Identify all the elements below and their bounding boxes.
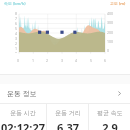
staticText: 2 (46, 58, 49, 63)
staticText: 1 (32, 58, 35, 63)
staticText: 4 (75, 58, 78, 63)
staticText: 02:12:27 (1, 120, 45, 130)
staticText: 6.37 (57, 120, 79, 130)
staticText: 4 (15, 31, 18, 36)
button[interactable]: 운동 시간 (0, 104, 46, 130)
staticText: 7 (15, 16, 18, 21)
staticText: 3 (61, 58, 64, 63)
button[interactable]: 운동 거리 (47, 104, 88, 130)
staticText: 400 (107, 11, 114, 16)
staticText: 평균 속도 (97, 109, 123, 117)
staticText: 운동 시간 (10, 109, 36, 117)
staticText: 속도 (km/h) (4, 1, 26, 6)
staticText: 5 (90, 58, 93, 63)
staticText: 운동 거리 (55, 109, 81, 117)
staticText: 운동 정보 (7, 89, 37, 99)
staticText: 2 (15, 41, 18, 46)
staticText: 8 (15, 11, 18, 16)
staticText: 고도 (m) (110, 1, 126, 6)
staticText: 1 (15, 46, 18, 51)
staticText: 0 (15, 51, 18, 53)
button[interactable]: 평균 속도 (89, 104, 130, 130)
staticText: 5 (15, 26, 18, 31)
staticText: 0 (107, 48, 110, 53)
staticText: 300 (107, 20, 114, 25)
staticText: 0 (17, 58, 20, 63)
staticText: 6 (15, 21, 18, 26)
staticText: 3 (15, 36, 18, 41)
staticText: 100 (107, 39, 114, 44)
staticText: 6 (104, 58, 107, 63)
staticText: 200 (107, 30, 114, 35)
staticText: 2.9 (102, 120, 118, 130)
button[interactable]: 운동 정보 (0, 84, 130, 103)
